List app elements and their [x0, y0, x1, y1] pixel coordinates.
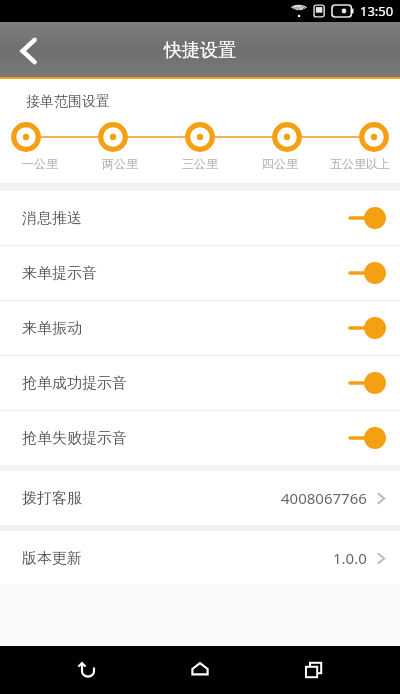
- button[interactable]: 拨打客服: [0, 471, 400, 525]
- button[interactable]: Toggle 抢单失败提示音: [350, 427, 386, 449]
- staticText: 一公里: [22, 156, 58, 171]
- staticText: 快捷设置: [164, 39, 236, 62]
- button[interactable]: Toggle 来单振动: [350, 317, 386, 339]
- staticText: 拨打客服: [22, 489, 82, 508]
- button[interactable]: 抢单成功提示音: [0, 356, 400, 410]
- staticText: 消息推送: [22, 209, 82, 228]
- staticText: 三公里: [182, 156, 218, 171]
- button[interactable]: Toggle 抢单成功提示音: [350, 372, 386, 394]
- staticText: 抢单失败提示音: [22, 429, 127, 448]
- staticText: 来单振动: [22, 319, 82, 338]
- button[interactable]: Toggle 消息推送: [350, 207, 386, 229]
- button[interactable]: Back: [0, 22, 58, 79]
- staticText: 版本更新: [22, 549, 82, 568]
- button[interactable]: 消息推送: [0, 191, 400, 245]
- staticText: 抢单成功提示音: [22, 374, 127, 393]
- staticText: 4008067766: [281, 488, 367, 508]
- button[interactable]: 抢单失败提示音: [0, 411, 400, 465]
- staticText: 五公里以上: [330, 156, 390, 171]
- button[interactable]: Toggle 来单提示音: [350, 262, 386, 284]
- button[interactable]: 来单振动: [0, 301, 400, 355]
- button[interactable]: Home: [173, 646, 227, 694]
- staticText: 四公里: [262, 156, 298, 171]
- staticText: 1.0.0: [333, 548, 367, 568]
- staticText: 两公里: [102, 156, 138, 171]
- staticText: 来单提示音: [22, 264, 97, 283]
- staticText: 接单范围设置: [26, 93, 110, 111]
- button[interactable]: Back: [60, 646, 114, 694]
- button[interactable]: Recent apps: [287, 646, 341, 694]
- staticText: 13:50: [360, 2, 394, 20]
- button[interactable]: 版本更新: [0, 531, 400, 585]
- button[interactable]: 来单提示音: [0, 246, 400, 300]
